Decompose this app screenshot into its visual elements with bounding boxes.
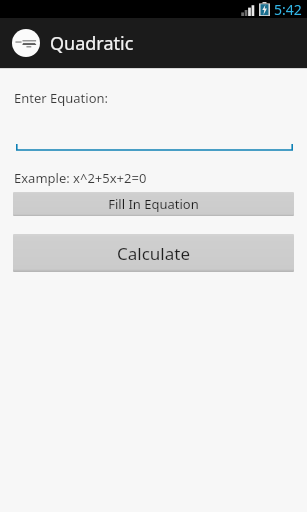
- staticText: Enter Equation:: [14, 89, 109, 107]
- staticText: Calculate: [117, 242, 190, 265]
- button[interactable]: [16, 143, 293, 151]
- button[interactable]: Calculate: [13, 234, 294, 272]
- staticText: Fill In Equation: [108, 195, 199, 213]
- staticText: 5:42: [274, 0, 302, 18]
- staticText: Example: x^2+5x+2=0: [14, 169, 147, 187]
- button[interactable]: Fill In Equation: [13, 192, 294, 216]
- staticText: Quadratic: [50, 31, 134, 56]
